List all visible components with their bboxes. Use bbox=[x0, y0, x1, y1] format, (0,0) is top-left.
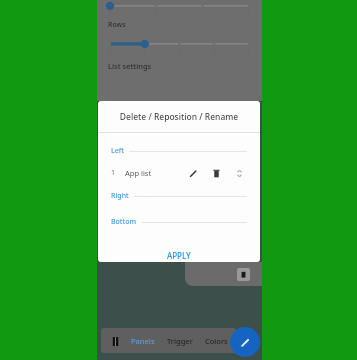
staticText: Rows bbox=[108, 20, 126, 30]
button[interactable]: Trigger bbox=[165, 332, 195, 350]
button[interactable]: Reposition bbox=[231, 165, 247, 181]
staticText: Trigger bbox=[167, 336, 193, 346]
button[interactable]: APPLY bbox=[157, 247, 201, 262]
staticText: 1 bbox=[111, 168, 116, 178]
staticText: Left bbox=[111, 146, 124, 156]
button[interactable]: Delete panel bbox=[185, 262, 262, 286]
button[interactable]: 1 bbox=[98, 164, 260, 182]
other: Delete panel bbox=[237, 268, 250, 281]
staticText: Colors bbox=[205, 336, 228, 346]
button[interactable]: Rename bbox=[185, 165, 201, 181]
button[interactable]: Edit bbox=[230, 327, 260, 357]
staticText: Panels bbox=[131, 336, 155, 346]
staticText: Delete / Reposition / Rename bbox=[98, 111, 260, 123]
button[interactable]: Delete bbox=[208, 165, 224, 181]
button[interactable]: Menu bbox=[107, 333, 123, 349]
staticText: APPLY bbox=[167, 250, 191, 259]
staticText: App list bbox=[125, 168, 152, 178]
staticText: Right bbox=[111, 191, 129, 201]
button[interactable]: Panels bbox=[129, 332, 157, 350]
button[interactable]: Colors bbox=[203, 332, 230, 350]
staticText: List settings bbox=[108, 61, 152, 71]
staticText: Bottom bbox=[111, 217, 137, 227]
